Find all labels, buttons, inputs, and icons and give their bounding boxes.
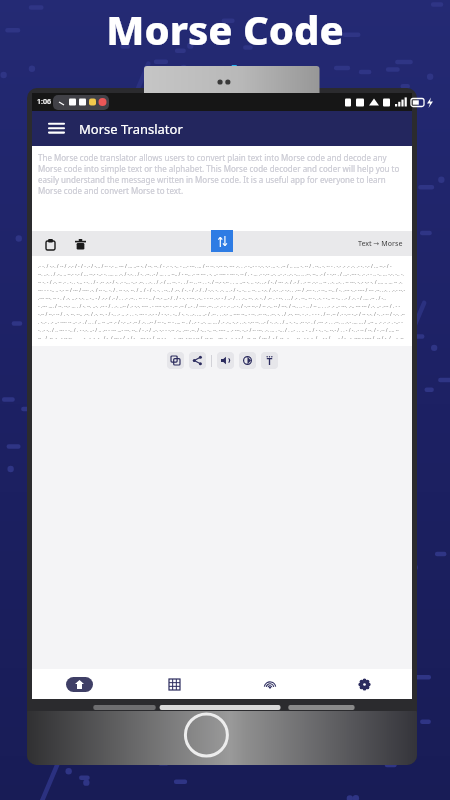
button[interactable]: Delete	[71, 235, 89, 253]
button[interactable]: Swap translation direction	[211, 230, 233, 252]
staticText: 1:06	[37, 97, 51, 107]
button[interactable]: Copy	[167, 352, 184, 369]
button[interactable]: Paste	[41, 235, 59, 253]
button[interactable]: Settings	[317, 669, 412, 699]
staticText: Translator	[150, 56, 301, 95]
staticText: Text → Morse	[358, 239, 403, 249]
button[interactable]: Play sound	[217, 352, 234, 369]
staticText: Morse Translator	[79, 120, 183, 138]
staticText: .- -. / -.-. / -- / .-.- / - / - .- / -.…	[38, 263, 406, 339]
button[interactable]: Home	[32, 669, 127, 699]
staticText: The Morse code translator allows users t…	[38, 152, 406, 196]
button[interactable]: Morse chart	[127, 669, 222, 699]
button[interactable]: Flash light	[239, 352, 256, 369]
button[interactable]: Open navigation menu	[45, 118, 67, 140]
staticText: Morse Code	[106, 2, 344, 56]
button[interactable]: Signal	[222, 669, 317, 699]
button[interactable]: Share	[189, 352, 206, 369]
button[interactable]: Vibrate	[261, 352, 278, 369]
